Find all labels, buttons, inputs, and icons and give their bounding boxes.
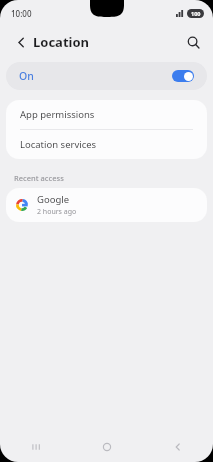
button[interactable]: Google [6,188,207,222]
staticText: Location [33,33,89,51]
button[interactable]: Location services [6,130,207,159]
staticText: Location services [20,138,97,151]
staticText: 10:00 [11,8,32,19]
staticText: Recent access [14,173,64,183]
button[interactable]: App permissions [6,100,207,129]
button[interactable]: Search [181,30,205,54]
staticText: On [19,69,34,83]
staticText: 100 [191,10,201,17]
staticText: Google [37,193,70,206]
button[interactable]: Back [142,432,213,462]
staticText: 2 hours ago [37,207,77,217]
button[interactable]: Back [10,31,32,53]
button[interactable]: Recents [0,432,71,462]
button[interactable]: On [6,62,207,90]
staticText: App permissions [20,108,95,121]
button[interactable]: Home [71,432,142,462]
